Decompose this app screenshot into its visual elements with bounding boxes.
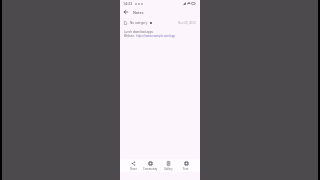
button[interactable]: Font: [177, 160, 195, 172]
button[interactable]: Back: [121, 7, 131, 17]
staticText: Lunch download apps: [124, 30, 153, 34]
button[interactable]: Share: [125, 160, 142, 172]
staticText: 14:32: [123, 1, 133, 6]
button[interactable]: Community: [142, 160, 159, 172]
staticText: Website:: [124, 34, 136, 38]
button[interactable]: No category: [124, 21, 152, 25]
staticText: Nov 28, 2023: [178, 21, 196, 25]
staticText: Share: [130, 167, 137, 171]
button[interactable]: Gallery: [159, 160, 177, 172]
staticText: Font: [183, 167, 189, 171]
staticText: Gallery: [164, 167, 173, 171]
staticText: Community: [143, 167, 158, 171]
staticText: Notes: [133, 10, 144, 15]
staticText: https://www.example.com/app: [136, 34, 175, 38]
staticText: No category: [130, 21, 148, 25]
